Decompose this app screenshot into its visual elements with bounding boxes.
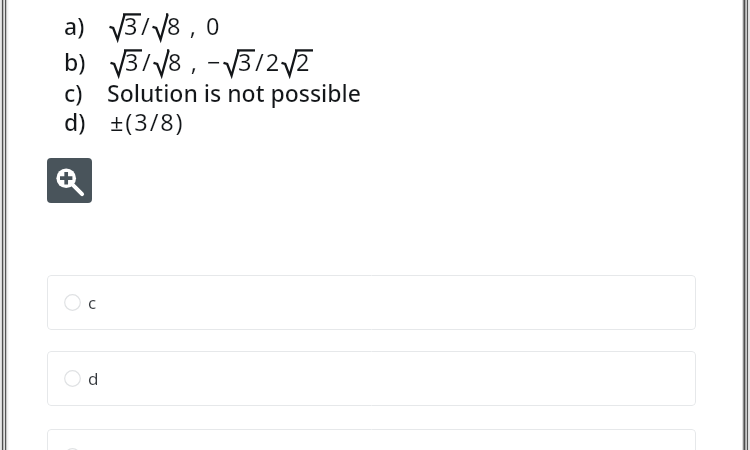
staticText: b) <box>64 46 86 77</box>
staticText: 3 <box>125 46 141 78</box>
button[interactable]: Zoom in <box>47 158 92 203</box>
staticText: c) <box>64 77 83 108</box>
button[interactable]: d <box>47 351 696 406</box>
staticText: c <box>88 291 97 314</box>
staticText: d) <box>64 106 86 137</box>
staticText: / <box>142 46 153 78</box>
staticText: /2 <box>255 46 281 78</box>
staticText: / <box>141 10 152 42</box>
button[interactable]: c <box>47 275 696 330</box>
staticText: ±(3/8) <box>110 106 185 138</box>
staticText: 8 <box>168 46 184 78</box>
staticText: , − <box>185 46 223 78</box>
button[interactable]: e <box>47 429 696 450</box>
staticText: 3 <box>238 46 254 78</box>
staticText: 3 <box>124 10 140 42</box>
staticText: Solution is not possible <box>107 77 361 108</box>
staticText: d <box>88 367 99 390</box>
staticText: , 0 <box>184 10 222 42</box>
staticText: a) <box>64 10 85 41</box>
staticText: 8 <box>167 10 183 42</box>
staticText: 2 <box>296 46 312 78</box>
